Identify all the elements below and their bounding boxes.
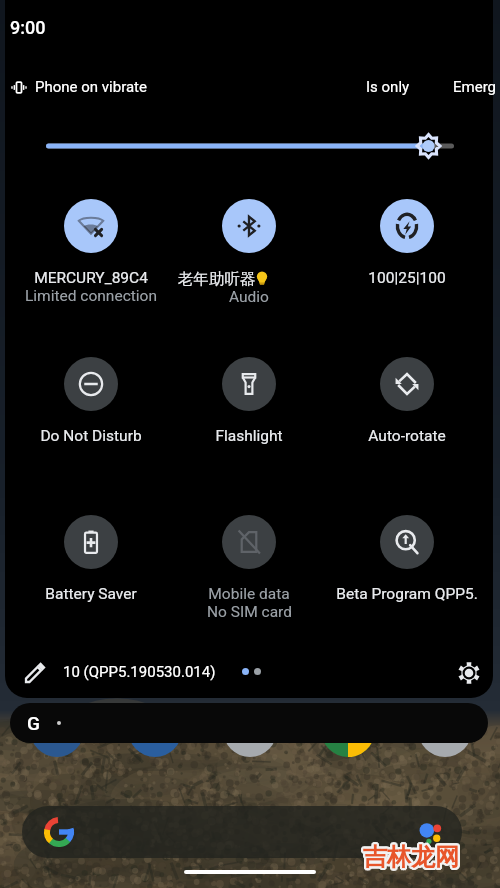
staticText: 10 (QPP5.190530.014)	[63, 663, 216, 681]
staticText: 吉林龙网	[365, 843, 461, 873]
staticText: Do Not Disturb	[40, 427, 142, 445]
staticText: 吉林龙网	[361, 842, 457, 872]
staticText: 吉林龙网	[365, 841, 461, 871]
button[interactable]: Auto rotate	[380, 357, 434, 411]
button[interactable]: Battery Saver	[64, 515, 118, 569]
staticText: 吉林龙网	[362, 843, 458, 873]
staticText: 吉林龙网	[364, 844, 460, 874]
button[interactable]: Google Assistant	[22, 806, 462, 858]
staticText: Emerg	[453, 78, 497, 96]
button[interactable]: Flashlight	[222, 357, 276, 411]
staticText: Auto-rotate	[368, 427, 446, 445]
button[interactable]: G	[10, 703, 488, 743]
staticText: 吉林龙网	[363, 844, 459, 874]
staticText: Beta Program QPP5.	[336, 585, 478, 603]
staticText: 吉林龙网	[363, 841, 459, 871]
staticText: 吉林龙网	[365, 842, 461, 872]
staticText: 吉林龙网	[364, 841, 460, 871]
staticText: 吉林龙网	[363, 840, 459, 870]
staticText: Limited connection	[25, 287, 157, 305]
staticText: 老年助听器	[178, 269, 256, 289]
button[interactable]: Mobile data	[222, 515, 276, 569]
staticText: 吉林龙网	[361, 843, 457, 873]
button[interactable]: Bluetooth	[222, 199, 276, 253]
staticText: G	[27, 712, 40, 734]
other: Google Assistant	[418, 819, 444, 845]
staticText: Audio	[229, 288, 269, 306]
button[interactable]: Do Not Disturb	[64, 357, 118, 411]
staticText: MERCURY_89C4	[34, 269, 148, 287]
staticText: Is only	[366, 78, 410, 96]
button[interactable]: Edit tiles	[20, 658, 50, 688]
button[interactable]	[44, 131, 456, 161]
staticText: 吉林龙网	[361, 841, 457, 871]
staticText: 吉林龙网	[363, 843, 459, 873]
staticText: 吉林龙网	[363, 842, 459, 872]
staticText: 吉林龙网	[362, 840, 458, 870]
staticText: 吉林龙网	[364, 842, 460, 872]
staticText: 吉林龙网	[362, 841, 458, 871]
button[interactable]: Wi-Fi	[64, 199, 118, 253]
staticText: 吉林龙网	[362, 844, 458, 874]
staticText: 吉林龙网	[364, 840, 460, 870]
staticText: No SIM card	[207, 603, 292, 621]
button[interactable]: Beta Program	[380, 515, 434, 569]
staticText: 吉林龙网	[362, 842, 458, 872]
staticText: Flashlight	[215, 427, 283, 445]
staticText: Phone on vibrate	[35, 78, 147, 96]
staticText: Battery Saver	[45, 585, 137, 603]
staticText: 吉林龙网	[364, 843, 460, 873]
button[interactable]: Settings	[452, 656, 486, 690]
staticText: 9:00	[10, 17, 46, 38]
button[interactable]: Hotspot	[380, 199, 434, 253]
staticText: Mobile data	[208, 585, 290, 603]
staticText: 100|25|100	[368, 269, 446, 287]
